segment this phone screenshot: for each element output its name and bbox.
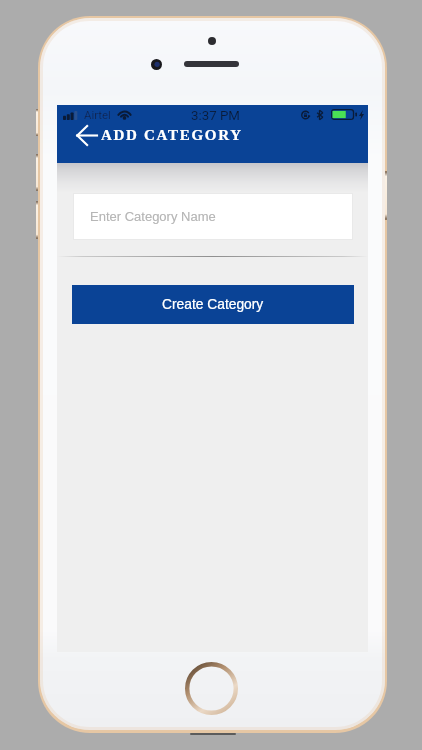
button[interactable]: Enter Category Name [73,193,353,240]
staticText: ADD CATEGORY [101,127,243,144]
button[interactable]: Create Category [72,285,354,324]
button[interactable]: Back [72,124,100,146]
staticText: Enter Category Name [90,209,216,224]
staticText: 3:37 PM [191,108,240,124]
staticText: Airtel [84,108,111,121]
staticText: Create Category [162,297,264,312]
